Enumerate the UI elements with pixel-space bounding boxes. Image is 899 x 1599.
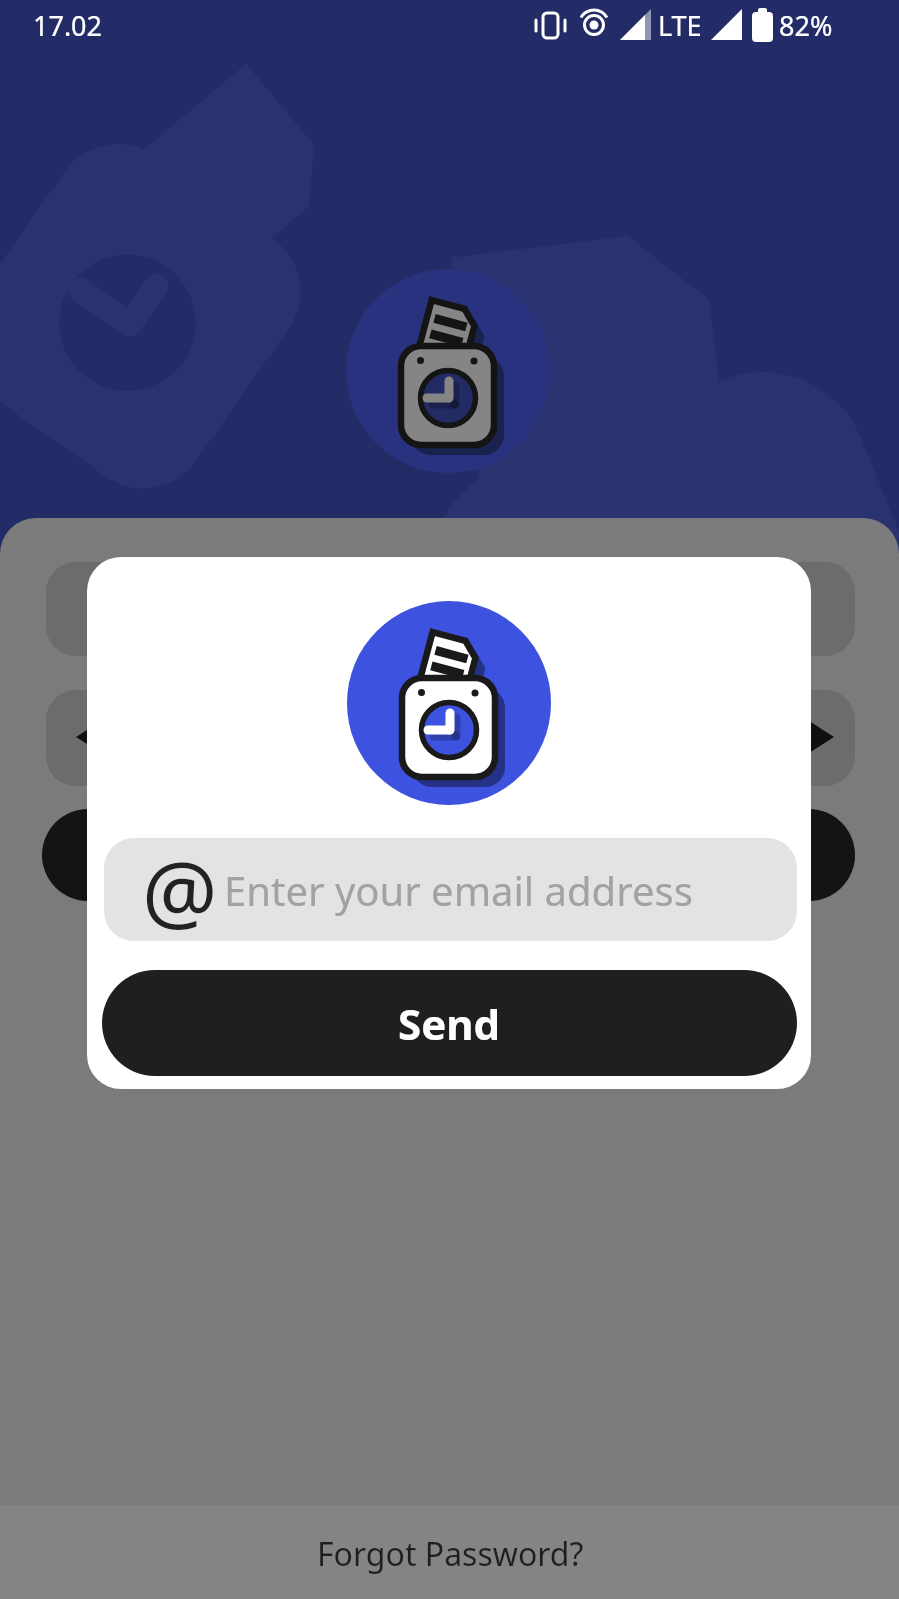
staticText: Send [398, 995, 501, 1052]
staticText: 82% [779, 7, 833, 43]
staticText: Enter your email address [224, 863, 693, 917]
staticText: 17.02 [33, 7, 103, 44]
button[interactable]: Send [102, 970, 797, 1076]
staticText: Forgot Password? [317, 1532, 584, 1576]
staticText: LTE [658, 7, 702, 43]
button[interactable]: Forgot Password? [280, 1524, 620, 1584]
staticText: @ [142, 833, 218, 936]
button[interactable]: @ [104, 838, 797, 941]
